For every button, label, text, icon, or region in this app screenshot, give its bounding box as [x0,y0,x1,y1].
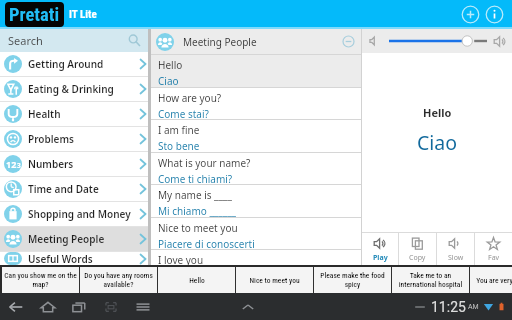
button[interactable]: Search [0,29,148,52]
staticText: Eating & Drinking [28,82,114,96]
button[interactable]: Meeting People [151,29,361,54]
button[interactable]: Play [362,233,398,265]
staticText: 12 [6,158,17,170]
staticText: Health [28,107,61,121]
staticText: Slow [448,253,464,263]
staticText: Can you show me on the map? [4,271,77,289]
button[interactable]: Hello [151,55,361,87]
staticText: I love you [158,253,204,265]
button[interactable]: Hide [414,301,426,313]
button[interactable]: Home [39,298,57,316]
staticText: Ciao [158,74,179,87]
staticText: Come stai? [158,107,209,119]
button[interactable]: Mute [369,35,381,47]
staticText: Useful Words [28,252,93,265]
staticText: IT Lite [69,8,97,21]
button[interactable]: Hello [158,267,235,293]
staticText: How are you? [158,91,222,105]
staticText: 3 [17,161,21,170]
staticText: Problems [28,132,74,146]
button[interactable]: Time and Date [0,177,148,201]
button[interactable]: Back [7,298,25,316]
button[interactable]: Meeting People [0,227,148,251]
button[interactable]: Problems [0,127,148,151]
button[interactable]: Menu [134,298,152,316]
button[interactable]: Do you have any rooms available? [80,267,157,293]
staticText: Do you have any rooms available? [82,271,155,289]
staticText: Hello [423,105,452,120]
button[interactable]: Useful Words [0,252,148,265]
button[interactable]: Please make the food spicy [314,267,391,293]
button[interactable]: I love you [151,250,361,265]
button[interactable]: 12 [0,152,148,176]
button[interactable]: Information [485,5,504,24]
button[interactable]: Take me to an international hospital [392,267,469,293]
staticText: Ciao [417,129,458,156]
staticText: AM [468,303,479,311]
staticText: Come ti chiami? [158,172,233,184]
button[interactable]: Volume up [493,34,508,49]
button[interactable]: Add phrase [461,5,480,24]
button[interactable]: Recent apps [70,298,88,316]
button[interactable]: Fav [475,233,512,265]
button[interactable]: Copy [399,233,436,265]
staticText: Fav [488,253,500,263]
button[interactable]: Getting Around [0,52,148,76]
staticText: Pretati [9,4,60,26]
staticText: Play [373,253,388,263]
staticText: Getting Around [28,57,104,71]
button[interactable]: My name is ____ [151,185,361,217]
staticText: Nice to meet you [249,276,300,285]
staticText: 11:25 [431,299,466,315]
staticText: Piacere di conoscerti [158,237,255,249]
button[interactable]: Screenshot [102,298,120,316]
button[interactable]: Collapse [342,35,355,48]
staticText: Numbers [28,157,74,171]
staticText: Please make the food spicy [316,271,389,289]
staticText: Search [8,33,43,48]
staticText: Time and Date [28,182,99,196]
staticText: Meeting People [183,35,257,49]
button[interactable]: How are you? [151,88,361,119]
staticText: Hello [189,276,205,285]
other: Search [128,34,141,47]
staticText: Shopping and Money [28,207,131,221]
button[interactable]: Eating & Drinking [0,77,148,101]
button[interactable] [388,34,487,48]
staticText: I am fine [158,123,200,137]
button[interactable]: Slow [437,233,474,265]
staticText: Nice to meet you [158,221,238,235]
staticText: Meeting People [28,232,105,246]
button[interactable]: I am fine [151,120,361,152]
button[interactable]: What is your name? [151,153,361,184]
staticText: Sto bene [158,139,200,152]
button[interactable]: Shopping and Money [0,202,148,226]
staticText: Hello [158,58,183,72]
staticText: Take me to an international hospital [394,271,467,289]
staticText: My name is ____ [158,188,232,202]
button[interactable]: Nice to meet you [236,267,313,293]
button[interactable]: You are very beautiful [470,267,512,293]
button[interactable]: Nice to meet you [151,218,361,249]
button[interactable]: Health [0,102,148,126]
staticText: What is your name? [158,156,251,170]
staticText: You are very beautiful [476,276,512,285]
button[interactable]: Can you show me on the map? [2,267,79,293]
staticText: Mi chiamo ______ [158,204,237,217]
button[interactable]: Show notifications [238,297,258,317]
staticText: Copy [409,253,426,263]
